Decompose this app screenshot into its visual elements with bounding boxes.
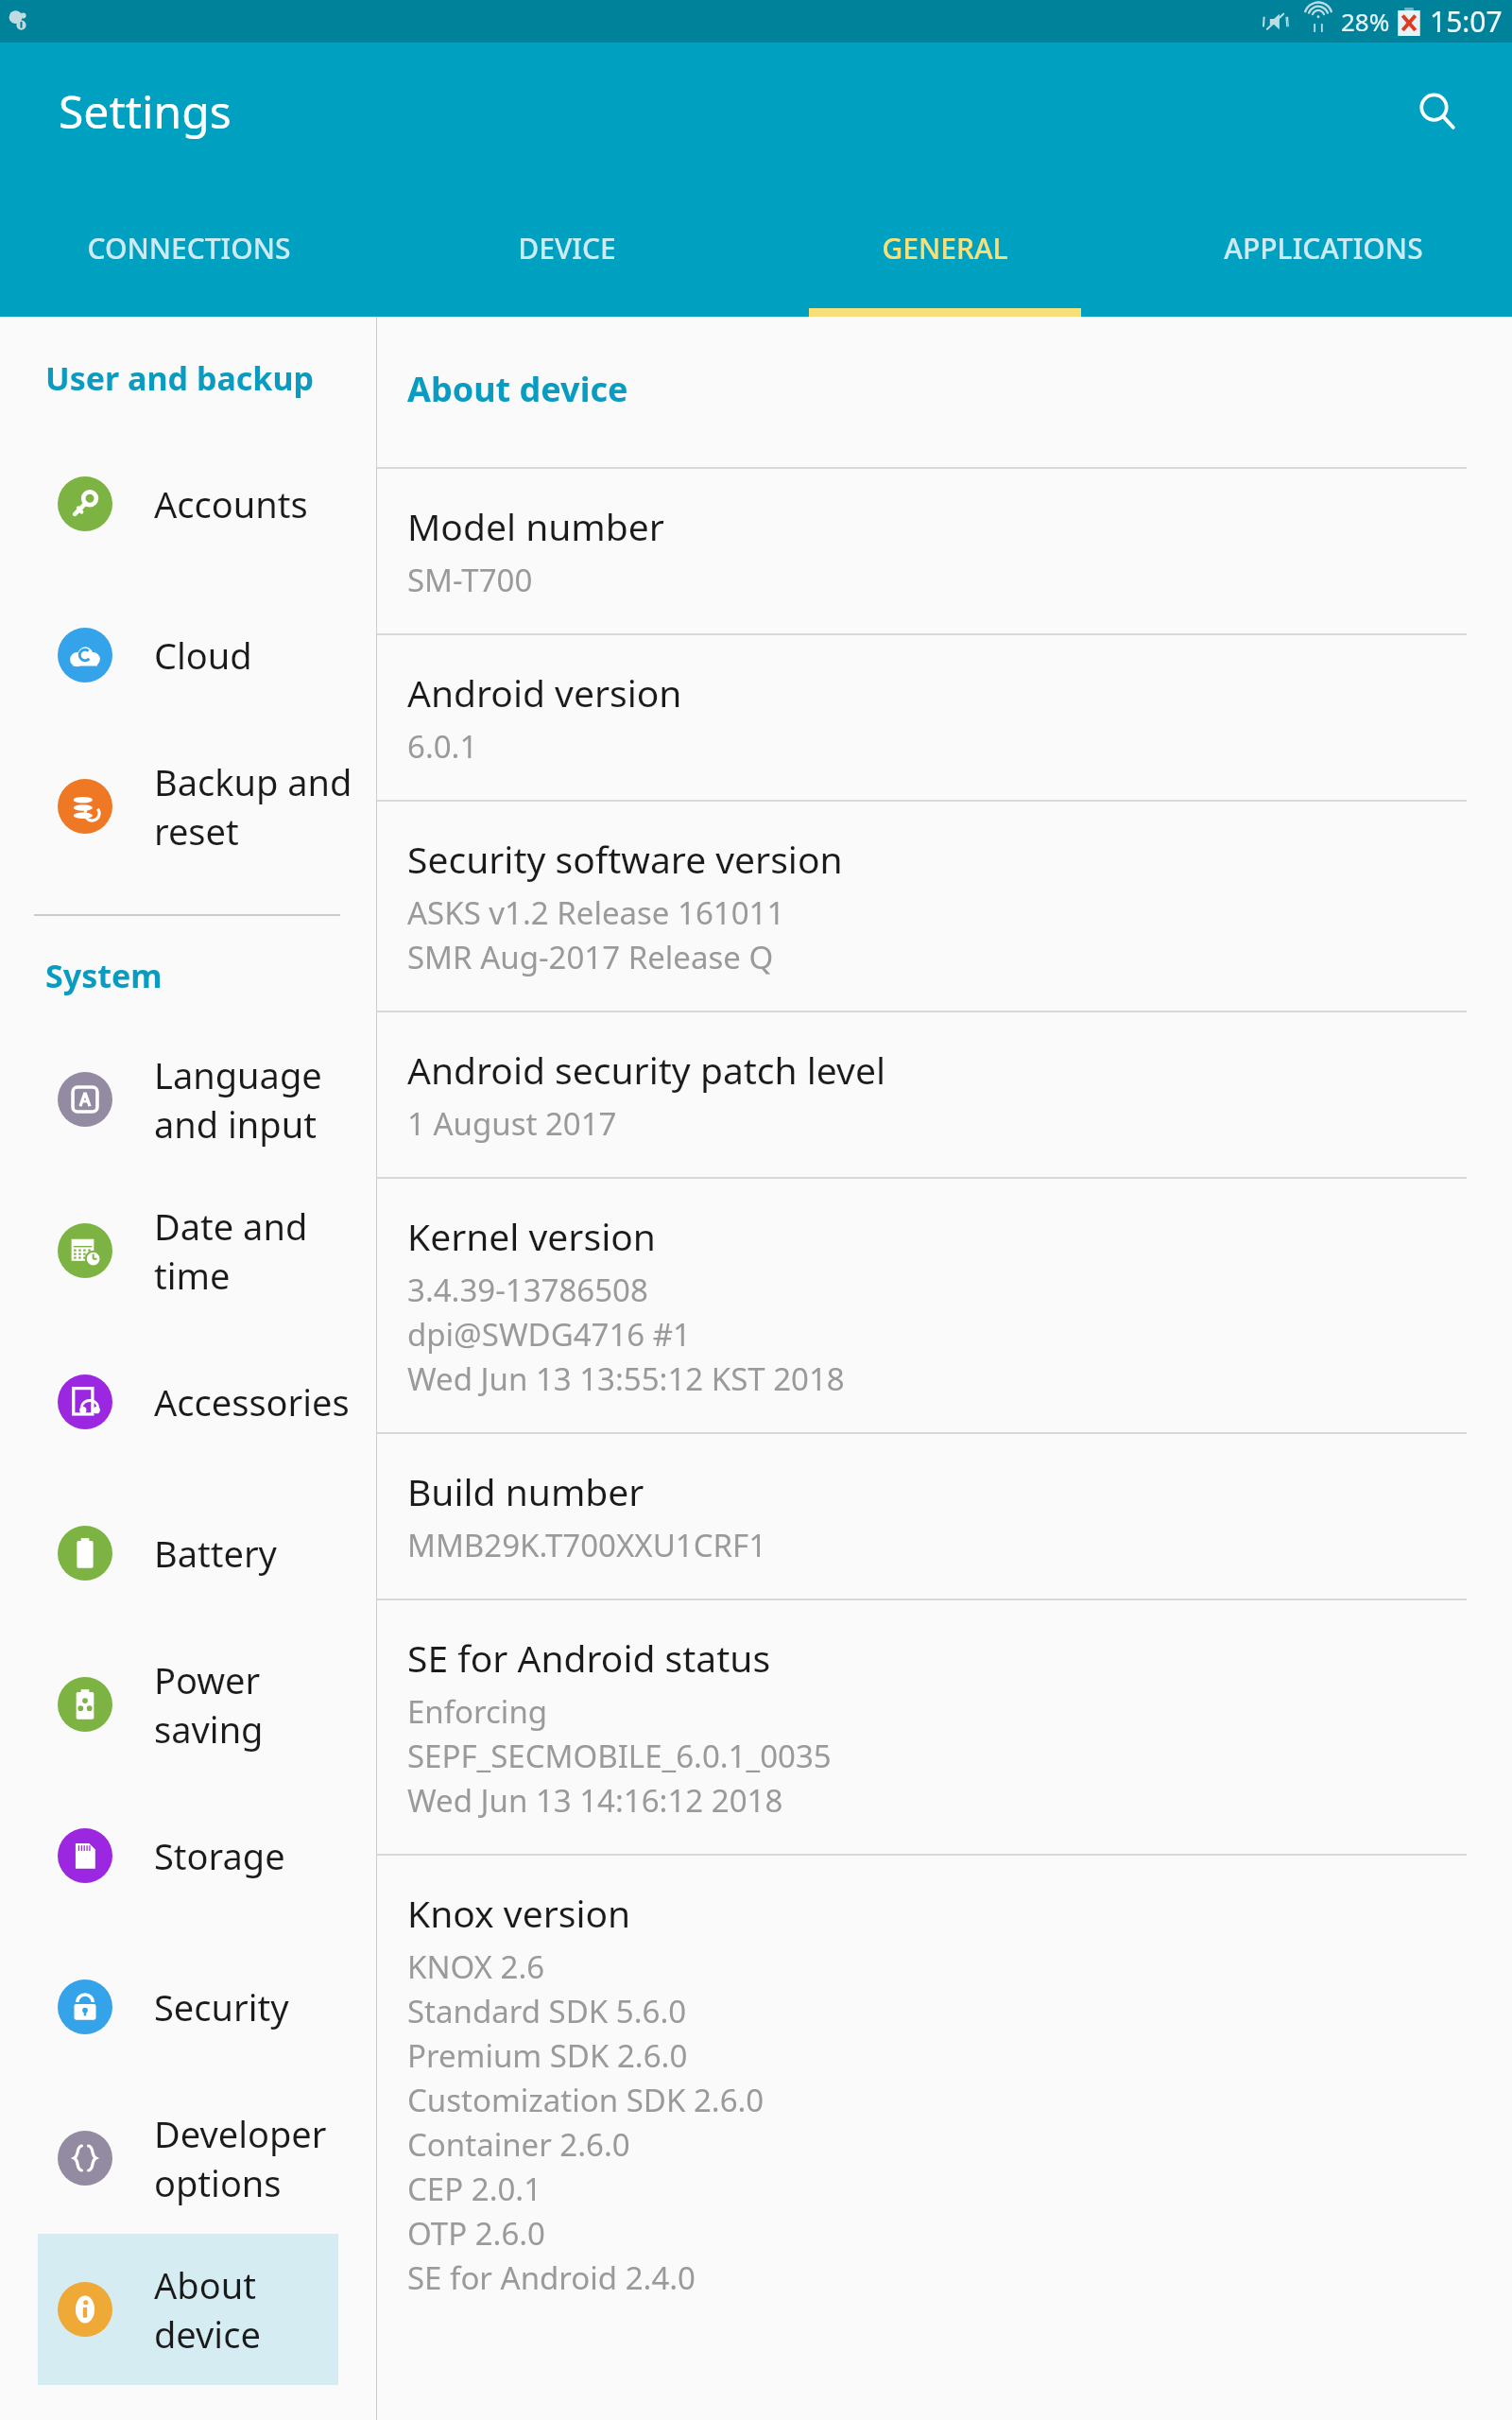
staticText: SE for Android 2.4.0 — [407, 2256, 696, 2299]
staticText: dpi@SWDG4716 #1 — [407, 1313, 691, 1356]
staticText: Power saving — [154, 1655, 376, 1754]
staticText: Build number — [407, 1466, 644, 1516]
staticText: Android security patch level — [407, 1045, 885, 1095]
staticText: System — [45, 954, 163, 997]
staticText: Knox version — [407, 1888, 631, 1938]
staticText: APPLICATIONS — [1224, 229, 1423, 268]
staticText: CONNECTIONS — [87, 229, 291, 268]
staticText: About device — [407, 366, 628, 412]
button[interactable]: CONNECTIONS — [0, 180, 378, 317]
button[interactable]: Power saving — [0, 1629, 376, 1780]
staticText: Backup and reset — [154, 757, 376, 856]
staticText: 15:07 — [1430, 2, 1503, 41]
button[interactable]: APPLICATIONS — [1134, 180, 1512, 317]
staticText: Wed Jun 13 13:55:12 KST 2018 — [407, 1357, 845, 1400]
staticText: Accounts — [154, 479, 308, 528]
button[interactable]: Android security patch level — [377, 1012, 1512, 1177]
button[interactable]: About device — [38, 2234, 338, 2385]
button[interactable]: Build number — [377, 1434, 1512, 1599]
staticText: KNOX 2.6 — [407, 1945, 545, 1988]
staticText: Container 2.6.0 — [407, 2123, 630, 2166]
staticText: SE for Android status — [407, 1633, 771, 1683]
staticText: Battery — [154, 1529, 277, 1578]
staticText: Settings — [59, 80, 232, 142]
button[interactable]: Model number — [377, 469, 1512, 633]
staticText: GENERAL — [882, 229, 1008, 268]
staticText: 1 August 2017 — [407, 1102, 617, 1145]
button[interactable]: Backup and reset — [0, 731, 376, 882]
staticText: Wed Jun 13 14:16:12 2018 — [407, 1779, 783, 1822]
staticText: ASKS v1.2 Release 161011 — [407, 891, 785, 934]
staticText: Premium SDK 2.6.0 — [407, 2034, 688, 2077]
button[interactable]: Developer options — [0, 2083, 376, 2234]
staticText: Enforcing — [407, 1690, 548, 1733]
button[interactable]: SE for Android status — [377, 1600, 1512, 1854]
button[interactable]: Android version — [377, 635, 1512, 800]
staticText: 6.0.1 — [407, 725, 478, 768]
staticText: Security — [154, 1982, 289, 2031]
button[interactable]: Kernel version — [377, 1179, 1512, 1432]
button[interactable]: Accessories — [0, 1326, 376, 1478]
staticText: Customization SDK 2.6.0 — [407, 2079, 765, 2121]
staticText: Model number — [407, 501, 664, 551]
button[interactable]: DEVICE — [378, 180, 756, 317]
staticText: SEPF_SECMOBILE_6.0.1_0035 — [407, 1735, 832, 1777]
staticText: Date and time — [154, 1201, 376, 1300]
staticText: DEVICE — [518, 229, 616, 268]
button[interactable]: GENERAL — [756, 180, 1134, 317]
staticText: SM-T700 — [407, 559, 533, 601]
staticText: Language and input — [154, 1050, 376, 1149]
staticText: Accessories — [154, 1377, 350, 1426]
button[interactable]: Date and time — [0, 1175, 376, 1326]
button[interactable]: Security software version — [377, 802, 1512, 1011]
staticText: Kernel version — [407, 1211, 656, 1261]
staticText: Cloud — [154, 631, 252, 680]
button[interactable]: Language and input — [0, 1024, 376, 1175]
button[interactable]: Battery — [0, 1478, 376, 1629]
button[interactable]: Accounts — [0, 428, 376, 579]
staticText: User and backup — [45, 356, 314, 400]
staticText: CEP 2.0.1 — [407, 2168, 542, 2210]
staticText: Storage — [154, 1831, 285, 1880]
staticText: Android version — [407, 667, 682, 717]
staticText: Security software version — [407, 834, 843, 884]
button[interactable]: Security — [0, 1931, 376, 2083]
staticText: 3.4.39-13786508 — [407, 1269, 648, 1311]
staticText: SMR Aug-2017 Release Q — [407, 936, 774, 978]
staticText: MMB29K.T700XXU1CRF1 — [407, 1524, 767, 1566]
staticText: OTP 2.6.0 — [407, 2212, 545, 2255]
staticText: Developer options — [154, 2109, 376, 2207]
staticText: About device — [154, 2260, 338, 2359]
button[interactable]: Storage — [0, 1780, 376, 1931]
staticText: 28% — [1341, 5, 1390, 38]
staticText: Standard SDK 5.6.0 — [407, 1990, 687, 2032]
button[interactable]: Search — [1397, 71, 1478, 152]
button[interactable]: Knox version — [377, 1856, 1512, 2331]
button[interactable]: Cloud — [0, 579, 376, 731]
